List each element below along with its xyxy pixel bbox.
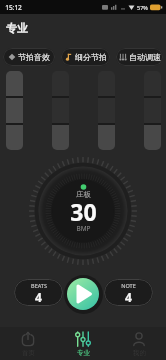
button[interactable]: 我的 bbox=[118, 331, 160, 359]
staticText: 57% bbox=[137, 4, 148, 11]
button[interactable]: 自动调速 bbox=[116, 48, 163, 66]
staticText: 庄板 bbox=[76, 190, 91, 199]
staticText: 首页 bbox=[22, 349, 35, 357]
staticText: 节拍音效 bbox=[18, 52, 50, 62]
button[interactable]: BEATS bbox=[14, 279, 63, 306]
staticText: 自动调速 bbox=[129, 52, 161, 62]
staticText: 4 bbox=[125, 289, 132, 305]
staticText: 4 bbox=[35, 289, 42, 305]
staticText: 专业 bbox=[6, 21, 28, 35]
button[interactable]: NOTE bbox=[104, 279, 153, 306]
staticText: BMP bbox=[76, 224, 91, 233]
staticText: BEATS bbox=[31, 282, 47, 289]
staticText: 专业 bbox=[77, 349, 90, 357]
button[interactable]: 节拍音效 bbox=[3, 48, 55, 66]
button[interactable] bbox=[67, 278, 99, 310]
staticText: 30 bbox=[70, 196, 97, 227]
staticText: 15:12 bbox=[5, 3, 22, 12]
staticText: 细分节拍 bbox=[75, 52, 107, 62]
button[interactable]: 细分节拍 bbox=[61, 48, 110, 66]
staticText: NOTE bbox=[121, 282, 136, 289]
button[interactable]: 首页 bbox=[7, 331, 49, 359]
staticText: 我的 bbox=[133, 349, 146, 357]
button[interactable]: 专业 bbox=[62, 331, 104, 359]
